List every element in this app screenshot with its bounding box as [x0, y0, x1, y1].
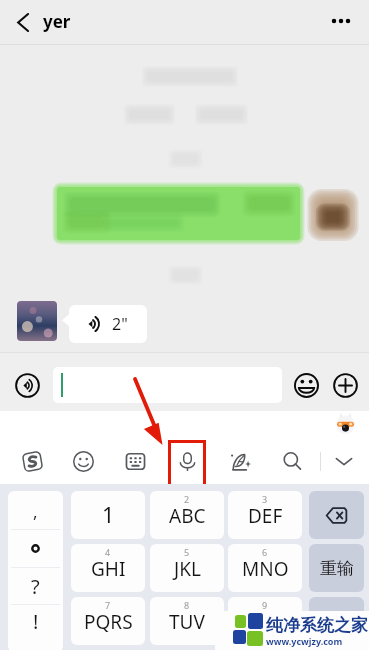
button[interactable]: Emoji [293, 372, 319, 398]
staticText: , [33, 500, 38, 523]
button[interactable]: Backspace [309, 491, 364, 539]
button[interactable]: 4 [71, 544, 145, 592]
staticText: 5 [184, 546, 190, 558]
button[interactable]: 5 [150, 544, 224, 592]
button[interactable]: More functions [332, 372, 358, 398]
button[interactable]: 7 [71, 597, 145, 645]
staticText: 6 [262, 546, 268, 558]
staticText: 2 [184, 493, 190, 505]
staticText: GHI [91, 556, 126, 582]
staticText: 1 [102, 499, 115, 529]
button[interactable]: Period [8, 529, 63, 567]
button[interactable]: Keyboard [114, 440, 156, 482]
button[interactable]: Emoji [62, 440, 104, 482]
staticText: ABC [169, 503, 206, 529]
staticText: www.ycwjzy.com [266, 635, 343, 647]
staticText: MNO [242, 556, 289, 582]
staticText: 纯净系统之家 [266, 615, 368, 636]
staticText: 7 [105, 599, 111, 611]
staticText: 2" [112, 313, 128, 335]
button[interactable]: Handwriting [219, 440, 261, 482]
button[interactable]: ! [8, 604, 63, 645]
staticText: WXYZ [240, 609, 291, 635]
button[interactable]: , [8, 491, 63, 529]
button[interactable]: 2 [150, 491, 224, 539]
button[interactable]: 1 [71, 491, 145, 539]
button[interactable]: More options [325, 5, 357, 37]
button[interactable]: Message input [53, 367, 282, 403]
button[interactable]: Enter [309, 597, 364, 645]
button[interactable]: Back [8, 7, 38, 37]
button[interactable]: ? [8, 567, 63, 605]
staticText: ? [31, 573, 40, 600]
staticText: PQRS [84, 609, 133, 635]
button[interactable]: 6 [228, 544, 302, 592]
button[interactable]: Sogou input method [11, 440, 53, 482]
button[interactable]: Collapse keyboard [323, 440, 365, 482]
staticText: 9 [262, 599, 268, 611]
staticText: JKL [174, 556, 201, 582]
button[interactable]: My avatar [17, 301, 57, 341]
button[interactable]: Switch to voice input [10, 368, 44, 402]
staticText: DEF [248, 503, 283, 529]
button[interactable]: Search [271, 440, 313, 482]
button[interactable]: 重输 [309, 544, 364, 592]
staticText: 3 [262, 493, 268, 505]
button[interactable]: 9 [228, 597, 302, 645]
button[interactable]: 3 [228, 491, 302, 539]
staticText: ! [33, 608, 39, 635]
button[interactable]: Voice message, 2 seconds [69, 305, 147, 343]
staticText: 4 [105, 546, 111, 558]
button[interactable]: Voice input [166, 440, 208, 482]
button[interactable]: 8 [150, 597, 224, 645]
staticText: TUV [169, 609, 205, 635]
staticText: 重输 [320, 558, 354, 579]
staticText: 8 [184, 599, 190, 611]
staticText: yer [43, 10, 71, 33]
